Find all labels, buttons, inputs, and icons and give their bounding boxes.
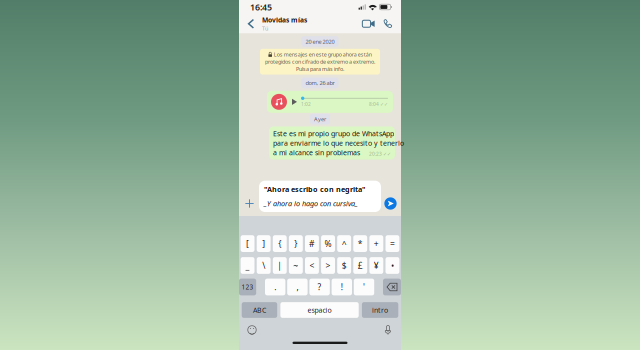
button[interactable]: Emoji <box>244 324 260 336</box>
button[interactable]: % <box>321 235 335 252</box>
button[interactable]: ? <box>309 279 330 295</box>
button[interactable]: * <box>353 235 367 252</box>
staticText: Ayer <box>314 115 326 123</box>
staticText: # <box>309 238 315 249</box>
button[interactable]: [ <box>241 235 254 252</box>
staticText: para enviarme lo que necesito y tenerlo <box>273 138 404 148</box>
staticText: | <box>277 260 282 271</box>
staticText: ^ <box>342 238 347 249</box>
staticText: ~ <box>293 260 298 271</box>
staticText: 123 <box>242 283 254 291</box>
staticText: Pulsa para más info. <box>296 65 344 73</box>
staticText: 8:04 ✓✓ <box>369 101 388 107</box>
staticText: ' <box>363 281 365 293</box>
staticText: 1:02 <box>301 101 311 107</box>
button[interactable]: < <box>305 257 319 274</box>
staticText: Movidas mías <box>262 15 307 24</box>
staticText: "Ahora escribo con negrita" <box>264 184 365 194</box>
staticText: 16:45 <box>250 1 272 13</box>
staticText: ABC <box>253 305 266 315</box>
button[interactable]: 123 <box>239 279 256 295</box>
staticText: _ <box>246 260 250 271</box>
staticText: , <box>296 281 298 293</box>
button[interactable]: > <box>321 257 335 274</box>
button[interactable]: intro <box>362 302 398 318</box>
button[interactable]: { <box>273 235 287 252</box>
staticText: [ <box>246 238 249 249</box>
staticText: 20:23 ✓✓ <box>369 151 391 157</box>
button[interactable]: \ <box>257 257 271 274</box>
button[interactable]: _ <box>241 257 254 274</box>
button[interactable]: £ <box>353 257 367 274</box>
button[interactable]: Voice call <box>378 14 397 33</box>
staticText: • <box>391 260 394 271</box>
staticText: { <box>278 238 281 249</box>
staticText: > <box>326 260 331 271</box>
staticText: $ <box>342 260 347 271</box>
button[interactable]: } <box>289 235 303 252</box>
staticText: + <box>374 238 379 249</box>
staticText: dom, 26 abr <box>305 79 334 87</box>
staticText: < <box>309 260 314 271</box>
staticText: ! <box>341 281 343 293</box>
button[interactable]: # <box>305 235 319 252</box>
button[interactable]: $ <box>337 257 351 274</box>
button[interactable]: . <box>265 279 285 295</box>
staticText: * <box>358 238 363 249</box>
staticText: } <box>294 238 297 249</box>
staticText: ? <box>318 281 322 293</box>
staticText: _Y ahora lo hago con cursiva_ <box>264 199 358 208</box>
staticText: Tú <box>262 24 268 32</box>
staticText: . <box>274 281 276 293</box>
button[interactable]: ! <box>332 279 352 295</box>
staticText: a mi alcance sin problemas <box>273 148 360 157</box>
staticText: ] <box>262 238 265 249</box>
button[interactable]: | <box>273 257 287 274</box>
button[interactable]: = <box>385 235 399 252</box>
button[interactable]: Attach <box>240 195 259 212</box>
staticText: protegidos con cifrado de extremo a extr… <box>265 58 375 65</box>
button[interactable]: ¥ <box>369 257 383 274</box>
button[interactable]: , <box>287 279 308 295</box>
button[interactable]: ] <box>257 235 271 252</box>
button[interactable]: Back <box>240 14 262 33</box>
staticText: intro <box>372 305 388 315</box>
button[interactable]: ABC <box>242 302 277 318</box>
button[interactable]: Dictate <box>380 324 396 336</box>
button[interactable]: espacio <box>280 302 359 318</box>
button[interactable]: Delete <box>383 279 401 295</box>
staticText: ¥ <box>374 260 379 271</box>
button[interactable]: ' <box>354 279 374 295</box>
button[interactable]: Video call <box>359 14 378 33</box>
button[interactable]: ~ <box>289 257 303 274</box>
button[interactable]: • <box>385 257 399 274</box>
staticText: Los mensajes en este grupo ahora están <box>274 51 372 58</box>
button[interactable]: Send <box>381 195 400 212</box>
staticText: Este es mi propio grupo de WhatsApp <box>273 129 394 138</box>
staticText: espacio <box>308 305 332 315</box>
staticText: 20 ene 2020 <box>305 38 334 45</box>
staticText: £ <box>358 260 363 271</box>
button[interactable]: + <box>369 235 383 252</box>
staticText: = <box>390 238 395 249</box>
button[interactable]: ^ <box>337 235 351 252</box>
staticText: \ <box>262 260 265 271</box>
staticText: % <box>325 238 332 249</box>
